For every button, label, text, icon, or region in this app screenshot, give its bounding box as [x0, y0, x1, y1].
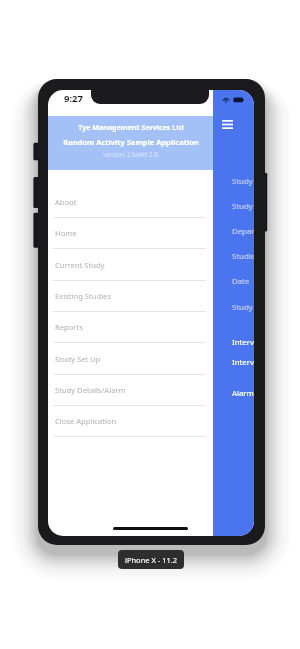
button[interactable]: Reports	[53, 312, 206, 343]
staticText: Study Set Up	[55, 354, 101, 364]
button[interactable]: Study Set Up	[232, 176, 254, 186]
staticText: Random Activity Sample Application	[63, 137, 199, 147]
staticText: Existing Studies	[55, 291, 112, 301]
button[interactable]: Close Application	[53, 406, 206, 437]
staticText: Study Details/Alarm	[55, 385, 126, 395]
button[interactable]: Existing Studies	[53, 281, 206, 312]
staticText: Studies	[232, 251, 254, 261]
button[interactable]: Study Notes	[232, 302, 254, 312]
staticText: Close Application	[55, 416, 117, 426]
staticText: Interval Alarm	[232, 357, 254, 367]
button[interactable]: Studies	[232, 251, 254, 261]
staticText: iPhone X - 11.2	[125, 555, 178, 565]
staticText: Date	[232, 276, 250, 286]
staticText: version 2 build 2.0	[103, 150, 158, 159]
staticText: Interval Beep	[232, 337, 254, 347]
button[interactable]: Alarm Time	[232, 388, 254, 398]
staticText: Department	[232, 226, 254, 236]
staticText: Reports	[55, 322, 83, 332]
button[interactable]: Interval Beep	[232, 337, 254, 347]
staticText: Home	[55, 228, 77, 238]
staticText: Study Set Up	[232, 176, 254, 186]
button[interactable]: Open navigation menu	[222, 120, 233, 129]
button[interactable]: Department	[232, 226, 254, 236]
staticText: Alarm Time	[232, 388, 254, 398]
button[interactable]: Study Details	[232, 201, 254, 211]
button[interactable]: Study Details/Alarm	[53, 375, 206, 406]
button[interactable]: Current Study	[53, 249, 206, 281]
button[interactable]: Date	[232, 276, 250, 286]
staticText: Study Details	[232, 201, 254, 211]
staticText: About	[55, 197, 77, 207]
staticText: Tye Management Services Ltd	[78, 122, 184, 132]
staticText: 9:27	[64, 92, 83, 105]
button[interactable]: Home	[53, 218, 206, 249]
button[interactable]: Interval Alarm	[232, 357, 254, 367]
button[interactable]: Study Set Up	[53, 343, 206, 375]
button[interactable]: About	[53, 187, 206, 218]
staticText: Study Notes	[232, 302, 254, 312]
staticText: Current Study	[55, 260, 105, 270]
